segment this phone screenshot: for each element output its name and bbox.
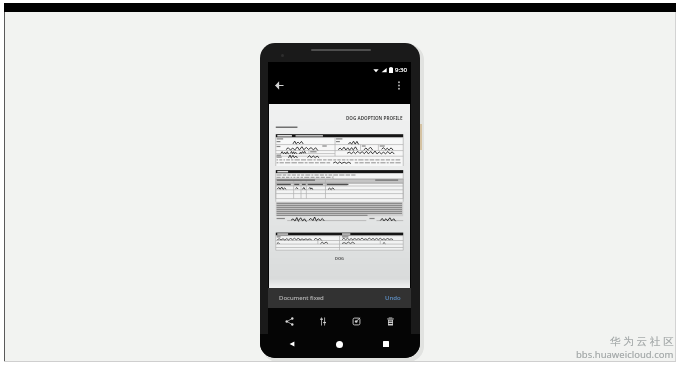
button[interactable]: Delete <box>378 309 402 333</box>
button[interactable]: Home <box>329 334 349 354</box>
staticText: 9:30 <box>395 66 407 74</box>
button[interactable]: Share <box>277 309 301 333</box>
button[interactable]: Recents <box>376 334 396 354</box>
button[interactable]: Back <box>269 75 289 95</box>
staticText: Document fixed <box>279 294 324 302</box>
staticText: Undo <box>385 294 401 302</box>
staticText: 华 为 云 社 区 <box>610 334 674 348</box>
button[interactable]: Undo <box>383 292 403 304</box>
button[interactable]: Adjust <box>311 309 335 333</box>
staticText: bbs.huaweicloud.com <box>576 348 674 361</box>
button[interactable]: Back <box>282 334 302 354</box>
staticText: DOG <box>335 256 344 261</box>
button[interactable]: More options <box>389 75 409 95</box>
staticText: DOG ADOPTION PROFILE <box>346 115 403 121</box>
button[interactable]: Crop <box>344 309 368 333</box>
